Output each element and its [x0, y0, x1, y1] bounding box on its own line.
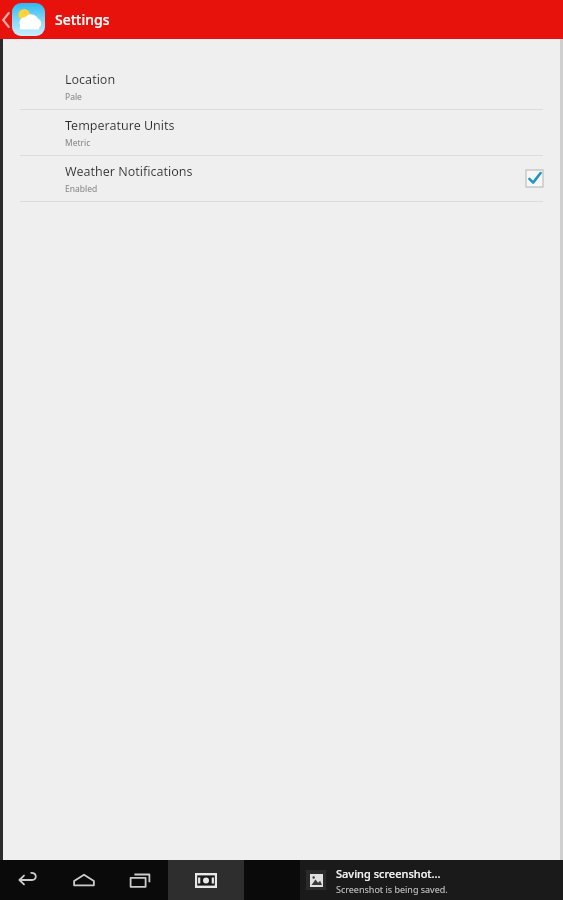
staticText: Temperature Units	[65, 117, 175, 134]
button[interactable]: Saving screenshot...	[300, 860, 563, 900]
staticText: Enabled	[65, 183, 98, 195]
button[interactable]: Weather Notifications	[0, 156, 563, 201]
staticText: Weather Notifications	[65, 163, 193, 180]
button[interactable]: Screenshot	[168, 860, 244, 900]
button[interactable]: Temperature Units	[0, 110, 563, 155]
staticText: Location	[65, 71, 116, 88]
staticText: Metric	[65, 137, 91, 149]
button[interactable]: Weather notifications enabled	[526, 170, 543, 187]
button[interactable]: Location	[0, 64, 563, 109]
button[interactable]: Navigate up	[0, 0, 12, 39]
staticText: Pale	[65, 91, 82, 103]
staticText: Saving screenshot...	[336, 866, 441, 881]
button[interactable]: Recents	[112, 860, 168, 900]
button[interactable]: Back	[0, 860, 56, 900]
button[interactable]: Home	[56, 860, 112, 900]
staticText: Screenshot is being saved.	[336, 883, 448, 895]
staticText: Settings	[55, 10, 110, 29]
